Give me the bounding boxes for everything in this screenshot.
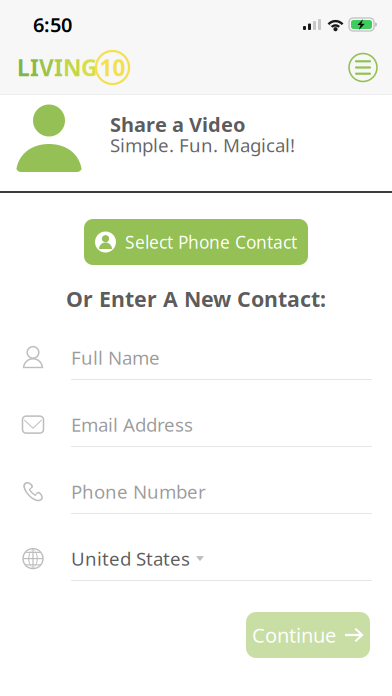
button[interactable]: Continue bbox=[246, 612, 370, 658]
staticText: 6:50 bbox=[33, 11, 72, 38]
staticText: Share a Video bbox=[110, 111, 246, 138]
staticText: L bbox=[17, 52, 30, 82]
staticText: Or Enter A New Contact: bbox=[66, 285, 326, 313]
staticText: I bbox=[30, 52, 39, 82]
staticText: G bbox=[81, 52, 97, 82]
staticText: 10 bbox=[99, 52, 125, 82]
button[interactable]: Select Phone Contact bbox=[84, 219, 308, 265]
staticText: Email Address bbox=[71, 412, 193, 437]
button[interactable]: Menu bbox=[341, 45, 385, 89]
staticText: Full Name bbox=[71, 345, 160, 370]
staticText: I bbox=[54, 52, 63, 82]
staticText: N bbox=[63, 52, 81, 82]
staticText: Select Phone Contact bbox=[125, 230, 297, 253]
staticText: Simple. Fun. Magical! bbox=[110, 133, 295, 157]
staticText: V bbox=[39, 52, 54, 82]
staticText: Continue bbox=[252, 622, 336, 648]
staticText: Phone Number bbox=[71, 479, 206, 504]
staticText: United States bbox=[71, 546, 190, 571]
